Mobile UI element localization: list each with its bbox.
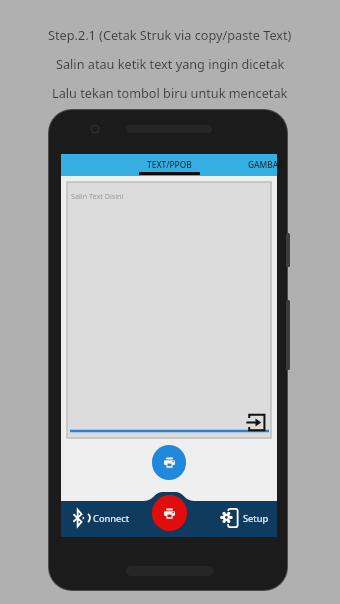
- button[interactable]: GAMBAR: [244, 154, 287, 176]
- staticText: Setup: [243, 512, 269, 525]
- button[interactable]: Print: [152, 495, 187, 531]
- staticText: GAMBAR: [248, 159, 284, 170]
- button[interactable]: Print preview: [152, 445, 186, 480]
- button[interactable]: Bluetooth: [70, 503, 132, 533]
- other: Setup: [222, 508, 239, 528]
- button[interactable]: Input text: [245, 413, 265, 431]
- button[interactable]: Setup: [218, 503, 270, 533]
- staticText: Connect: [93, 512, 130, 525]
- button[interactable]: TEXT/PPOB: [139, 154, 200, 176]
- staticText: Salin atau ketik text yang ingin dicetak: [56, 55, 285, 72]
- other: Bluetooth: [73, 509, 88, 527]
- staticText: Lalu tekan tombol biru untuk mencetak: [52, 84, 288, 101]
- staticText: Salin Text Disini: [71, 191, 124, 201]
- staticText: Step.2.1 (Cetak Struk via copy/paste Tex…: [48, 26, 292, 43]
- staticText: TEXT/PPOB: [147, 159, 192, 170]
